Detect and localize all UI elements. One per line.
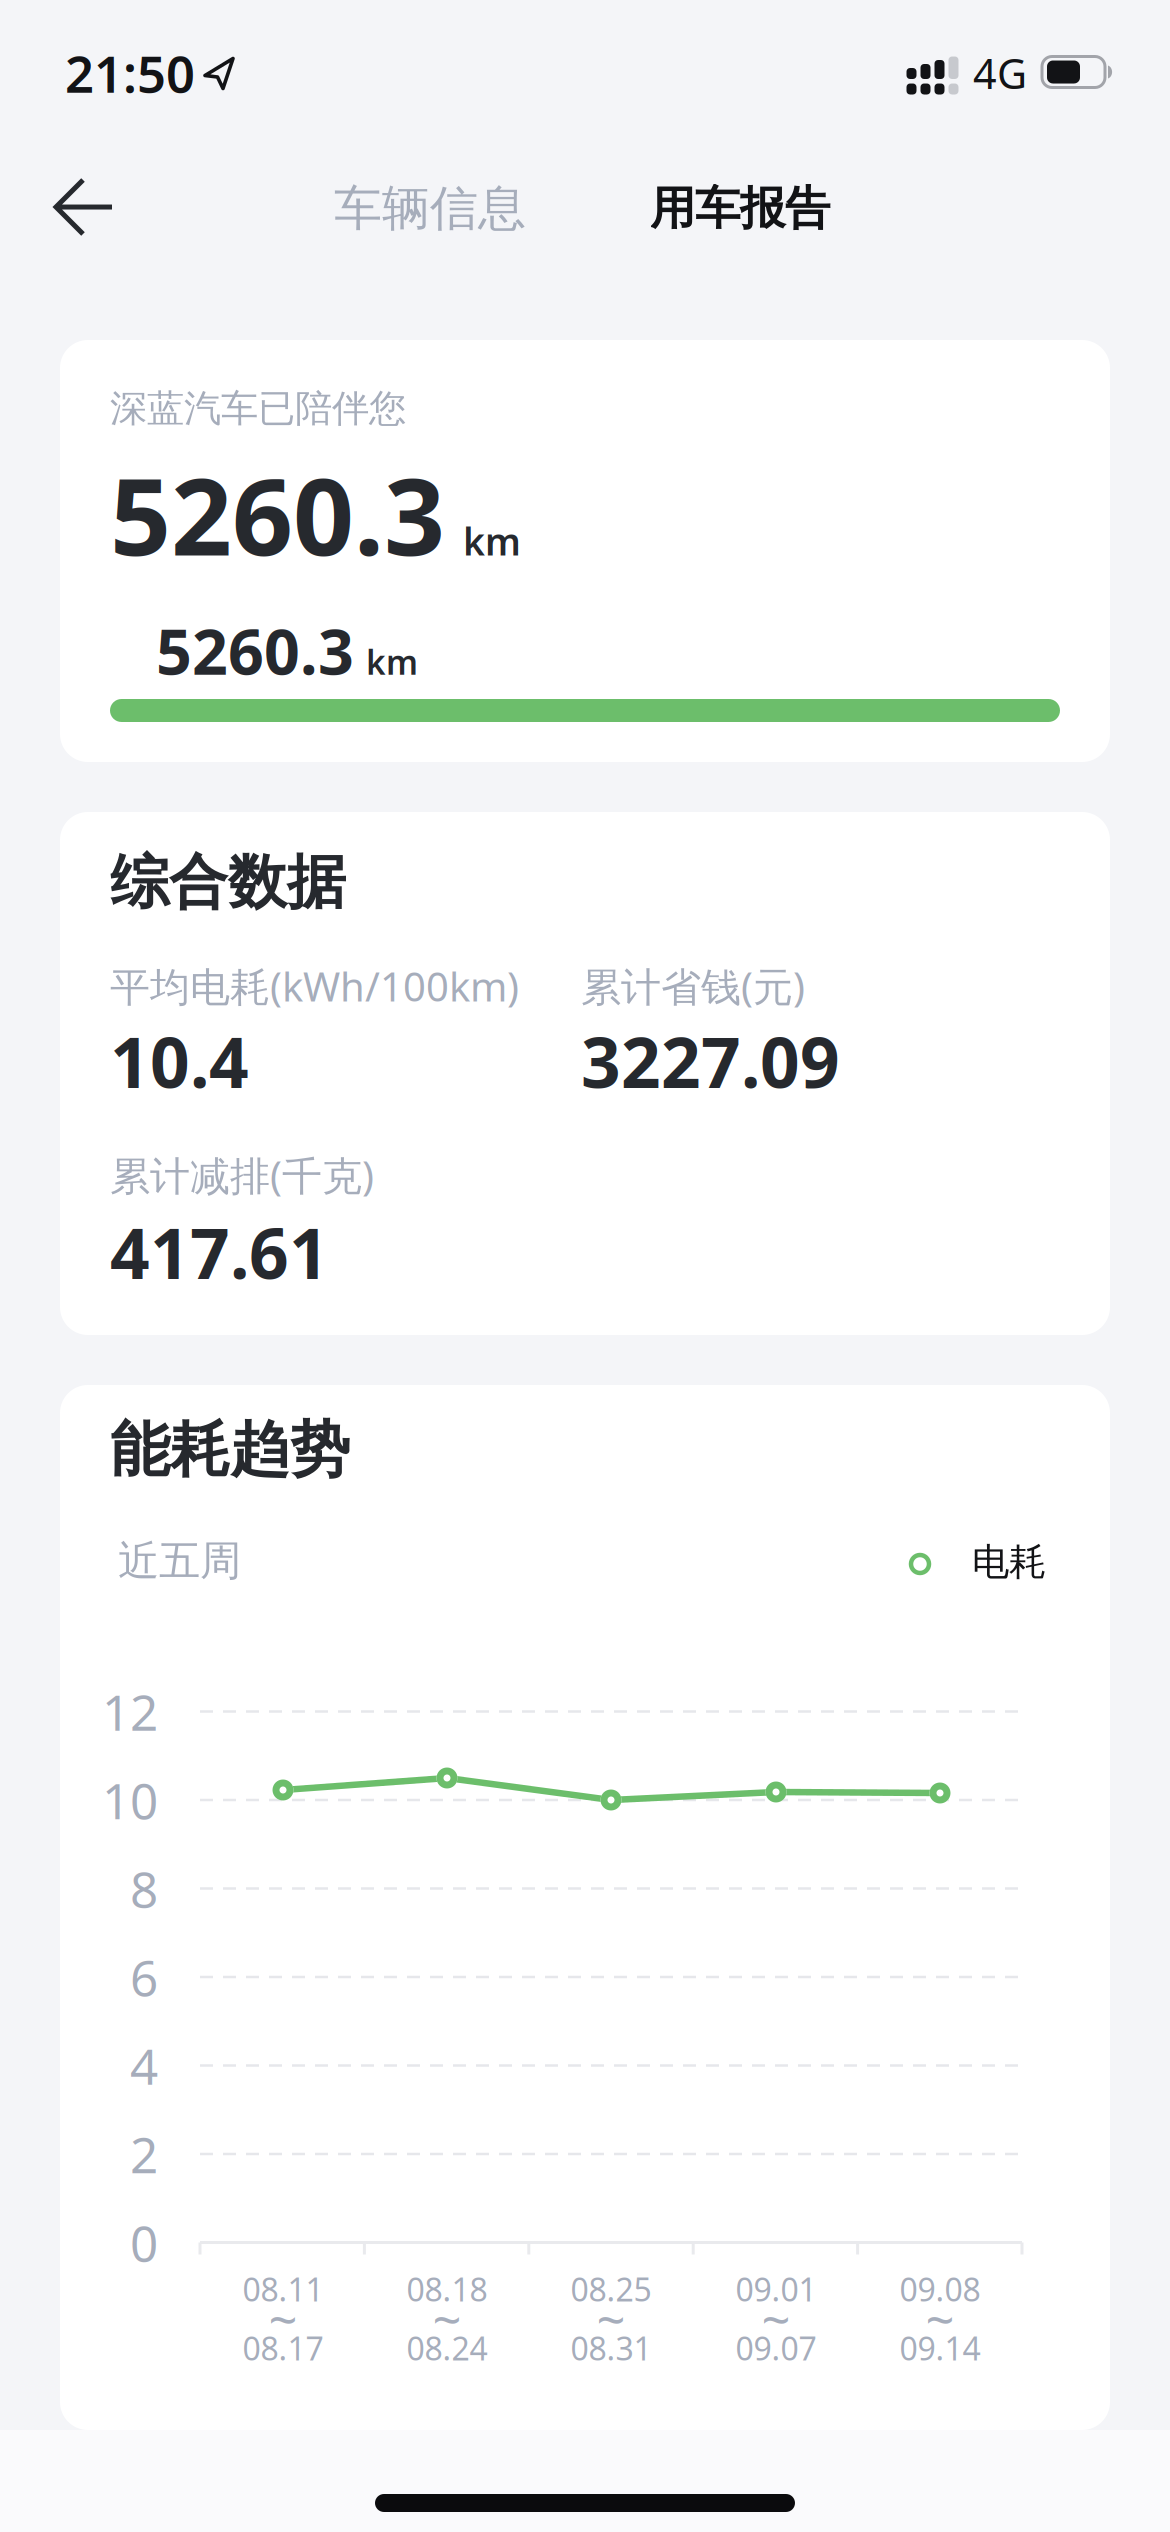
staticText: 近五周	[118, 1536, 241, 1586]
staticText: 08.11	[242, 2268, 323, 2310]
staticText: 09.14	[899, 2327, 980, 2369]
button[interactable]: Back	[39, 162, 129, 252]
staticText: km	[463, 516, 521, 566]
staticText: 5260.3	[156, 609, 354, 692]
staticText: ~	[432, 2285, 461, 2353]
staticText: 08.24	[406, 2327, 487, 2369]
staticText: 车辆信息	[334, 179, 526, 238]
staticText: 综合数据	[110, 846, 346, 919]
staticText: ~	[925, 2285, 954, 2353]
button[interactable]: 车辆信息	[300, 163, 560, 253]
staticText: 0	[130, 2210, 158, 2275]
staticText: 09.07	[735, 2327, 816, 2369]
staticText: ~	[761, 2285, 790, 2353]
staticText: 08.17	[242, 2327, 323, 2369]
staticText: 电耗	[972, 1539, 1046, 1585]
staticText: ~	[268, 2285, 297, 2353]
staticText: 能耗趋势	[110, 1413, 350, 1487]
staticText: 深蓝汽车已陪伴您	[110, 386, 406, 431]
staticText: 3227.09	[581, 1015, 840, 1107]
button[interactable]: 用车报告	[610, 163, 870, 253]
staticText: 2	[130, 2121, 158, 2187]
staticText: 4	[130, 2033, 158, 2098]
staticText: 09.01	[735, 2268, 816, 2310]
staticText: 8	[130, 1856, 158, 1921]
staticText: ~	[596, 2285, 625, 2353]
staticText: 累计省钱(元)	[581, 959, 805, 1012]
staticText: 平均电耗(kWh/100km)	[110, 959, 519, 1012]
staticText: 12	[102, 1679, 158, 1744]
staticText: 08.31	[570, 2327, 651, 2369]
staticText: 用车报告	[650, 181, 830, 236]
staticText: 6	[130, 1944, 158, 2010]
staticText: 累计减排(千克)	[110, 1148, 374, 1201]
staticText: 5260.3	[110, 443, 445, 585]
staticText: 4G	[973, 46, 1027, 100]
staticText: 08.18	[406, 2268, 487, 2310]
staticText: 08.25	[570, 2268, 651, 2310]
staticText: 10.4	[110, 1015, 249, 1107]
staticText: 417.61	[110, 1206, 329, 1298]
staticText: km	[366, 640, 418, 684]
staticText: 10	[102, 1767, 158, 1833]
staticText: 21:50	[65, 39, 195, 107]
staticText: 09.08	[899, 2268, 980, 2310]
